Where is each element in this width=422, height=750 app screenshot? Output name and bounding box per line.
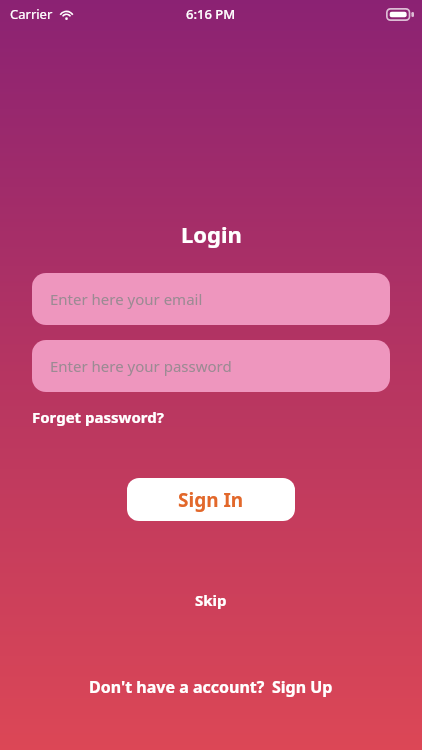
staticText: Sign In [178,487,244,513]
staticText: Login [181,219,242,249]
staticText: Enter here your email [50,289,203,309]
staticText: Skip [195,590,227,610]
staticText: Don't have a account? [89,676,265,698]
staticText: Forget password? [32,407,164,427]
other: Wi-Fi signal [59,9,74,20]
button[interactable]: Sign Up [272,676,333,698]
staticText: Carrier [10,5,53,23]
button[interactable]: Sign In [127,478,295,521]
button[interactable]: Skip [183,586,239,614]
button[interactable]: Enter here your password [32,340,390,392]
staticText: Sign Up [272,676,333,698]
staticText: Enter here your password [50,356,232,376]
button[interactable]: Enter here your email [32,273,390,325]
staticText: 6:16 PM [186,5,236,23]
button[interactable]: Forget password? [30,404,166,430]
other: Battery full [386,8,414,21]
